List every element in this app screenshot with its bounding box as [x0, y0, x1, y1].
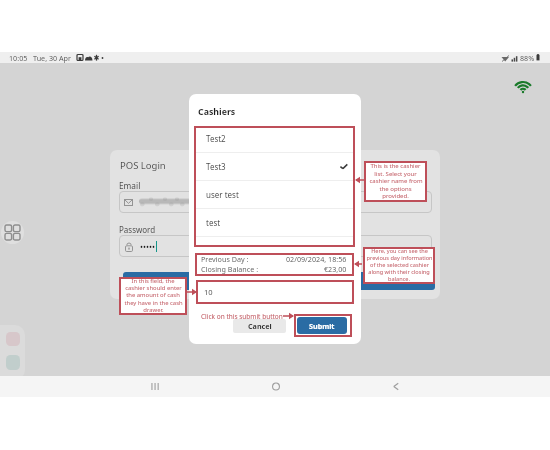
- staticText: 02/09/2024, 18:56: [286, 254, 347, 264]
- button[interactable]: Back: [385, 376, 407, 397]
- staticText: Password: [119, 224, 156, 235]
- button[interactable]: App: [6, 355, 20, 370]
- staticText: In this field, the: [131, 277, 175, 285]
- button[interactable]: Test3: [194, 153, 355, 180]
- button[interactable]: •••••: [119, 235, 432, 257]
- button[interactable]: Submit: [297, 317, 347, 334]
- staticText: the options: [379, 185, 412, 193]
- staticText: cashier should enter: [125, 284, 182, 292]
- button[interactable]: test: [194, 209, 355, 236]
- staticText: drawer.: [143, 306, 164, 314]
- staticText: Tue, 30 Apr: [33, 53, 72, 63]
- staticText: POS Login: [120, 159, 166, 172]
- staticText: the amount of cash: [126, 291, 180, 299]
- button[interactable]: Home: [265, 376, 287, 397]
- staticText: 88%: [520, 53, 535, 63]
- staticText: Submit: [309, 321, 335, 331]
- button[interactable]: Login: [123, 272, 435, 290]
- button[interactable]: App: [6, 332, 20, 346]
- staticText: 10: [204, 287, 213, 297]
- staticText: test: [206, 217, 221, 228]
- staticText: along with their closing: [368, 268, 430, 276]
- staticText: previous day information: [366, 254, 433, 262]
- staticText: they have in the cash: [124, 299, 183, 307]
- staticText: 10:05: [9, 53, 28, 63]
- button[interactable]: 10: [196, 280, 353, 303]
- staticText: Click on this submit button: [201, 312, 283, 321]
- staticText: €23,00: [324, 264, 347, 274]
- staticText: provided.: [382, 192, 409, 200]
- button[interactable]: Recents: [144, 376, 166, 397]
- staticText: of the selected cashier: [370, 261, 429, 269]
- staticText: Cancel: [248, 321, 272, 331]
- staticText: Previous Day :: [201, 254, 249, 264]
- staticText: balance.: [388, 275, 410, 283]
- staticText: Login: [268, 276, 291, 287]
- staticText: Test2: [206, 133, 226, 144]
- staticText: Closing Balance :: [201, 264, 259, 274]
- staticText: user test: [206, 189, 239, 200]
- staticText: cashier name from: [369, 177, 423, 185]
- button[interactable]: user test: [194, 181, 355, 208]
- button[interactable]: Test2: [194, 125, 355, 152]
- staticText: list. Select your: [374, 170, 417, 178]
- staticText: Cashiers: [198, 106, 236, 116]
- button[interactable]: [119, 191, 432, 213]
- staticText: Email: [119, 180, 141, 191]
- staticText: Here, you can see the: [371, 247, 428, 255]
- button[interactable]: Cancel: [233, 319, 286, 333]
- staticText: This is the cashier: [370, 162, 421, 170]
- staticText: •••••: [140, 241, 156, 252]
- staticText: Test3: [206, 161, 226, 172]
- button[interactable]: Apps: [1, 221, 24, 244]
